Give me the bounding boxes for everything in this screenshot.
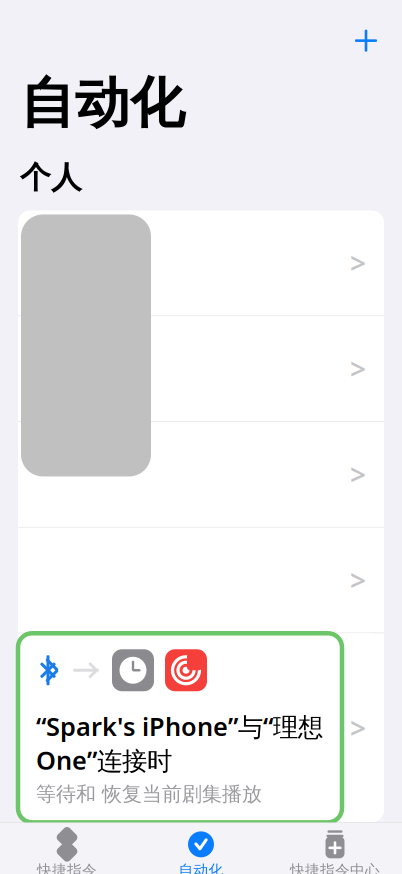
staticText: 自动化 (178, 861, 223, 874)
staticText: > (350, 456, 366, 493)
staticText: > (350, 244, 366, 282)
staticText: > (350, 709, 366, 746)
staticText: 等待和 恢复当前剧集播放 (36, 782, 262, 806)
button[interactable]: 快捷指令 (0, 829, 134, 874)
staticText: > (350, 561, 366, 599)
staticText: 快捷指令中心 (290, 861, 380, 874)
button[interactable]: 快捷指令中心 (268, 829, 402, 874)
staticText: 快捷指令 (37, 861, 97, 874)
button[interactable]: New Automation (344, 19, 388, 63)
staticText: “Spark's iPhone”与“理想 One”连接时 (36, 709, 323, 777)
button[interactable]: > (18, 422, 384, 527)
button[interactable]: 自动化 (134, 829, 268, 874)
button[interactable]: > (18, 316, 384, 421)
button[interactable]: “Spark's iPhone”与“理想 One”连接时 (18, 633, 384, 822)
staticText: 自动化 (20, 70, 185, 137)
staticText: 个人 (20, 159, 82, 196)
button[interactable]: > (18, 210, 384, 315)
button[interactable]: > (18, 528, 384, 633)
staticText: > (350, 350, 366, 387)
